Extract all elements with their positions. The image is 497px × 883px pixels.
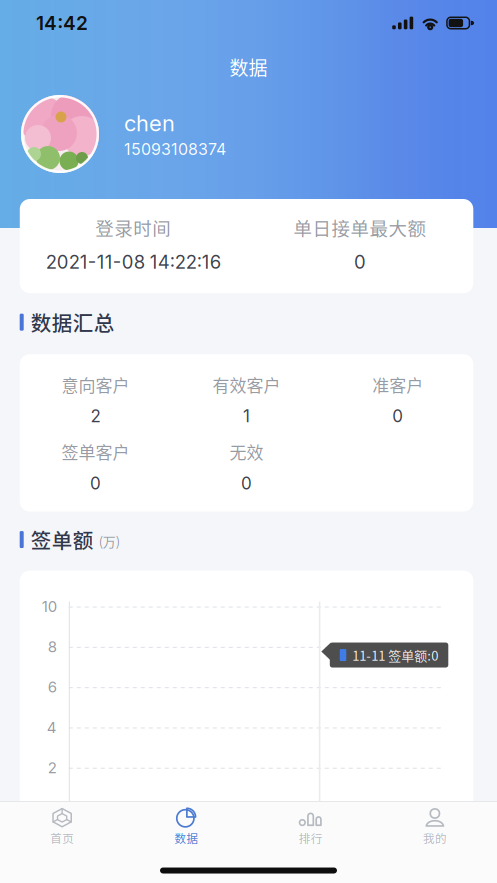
staticText: 首页 (50, 830, 74, 846)
staticText: 单日接单最大额 (293, 214, 426, 241)
staticText: 排行 (299, 830, 323, 846)
staticText: 6 (48, 678, 57, 696)
staticText: 4 (47, 718, 57, 736)
staticText: 登录时间 (95, 214, 171, 241)
staticText: 无效 (230, 439, 264, 464)
staticText: 有效客户 (213, 372, 281, 397)
staticText: (万) (99, 532, 120, 550)
staticText: 准客户 (372, 372, 423, 397)
staticText: 2 (90, 406, 100, 426)
staticText: 签单客户 (61, 439, 129, 464)
staticText: 意向客户 (61, 372, 129, 397)
button[interactable]: 我的 (373, 809, 497, 845)
staticText: 数据 (229, 53, 267, 81)
staticText: 0 (90, 473, 101, 494)
staticText: 2021-11-08 14:22:16 (46, 251, 221, 273)
staticText: 14:42 (36, 11, 88, 34)
staticText: 0 (241, 473, 252, 494)
button[interactable]: 排行 (248, 809, 373, 845)
button[interactable]: 数据 (124, 809, 248, 845)
staticText: 签单额 (31, 525, 94, 554)
staticText: 我的 (423, 830, 447, 846)
staticText: 1 (243, 406, 250, 426)
staticText: 数据 (174, 830, 198, 846)
staticText: 11-11 签单额:0 (352, 646, 438, 664)
staticText: 15093108374 (124, 140, 226, 159)
staticText: 8 (48, 638, 57, 656)
button[interactable]: 首页 (0, 809, 124, 845)
staticText: 0 (392, 406, 403, 426)
staticText: chen (124, 110, 175, 137)
staticText: 0 (354, 251, 366, 273)
staticText: 数据汇总 (31, 307, 115, 337)
staticText: 2 (48, 759, 57, 777)
staticText: 10 (42, 597, 57, 616)
